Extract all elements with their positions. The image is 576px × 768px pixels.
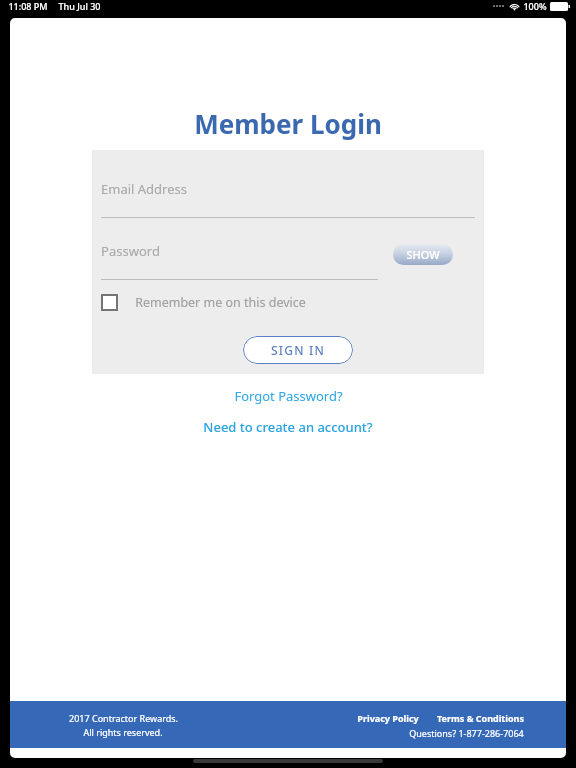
staticText: Terms & Conditions	[437, 712, 524, 724]
button[interactable]: SHOW	[393, 244, 453, 265]
staticText: Member Login	[194, 106, 382, 141]
staticText: Thu Jul 30	[58, 0, 101, 12]
button[interactable]: Terms & Conditions	[437, 712, 524, 724]
staticText: 11:08 PM	[8, 0, 48, 12]
staticText: Need to create an account?	[203, 418, 373, 436]
button[interactable]: Password	[101, 234, 378, 280]
staticText: SIGN IN	[271, 342, 325, 358]
staticText: Password	[101, 242, 160, 260]
staticText: Privacy Policy	[357, 712, 419, 724]
staticText: Forgot Password?	[234, 387, 343, 405]
staticText: Questions? 1-877-286-7064	[409, 727, 524, 739]
button[interactable]: Remember me on this device	[101, 288, 306, 316]
staticText: All rights reserved.	[83, 726, 163, 738]
staticText: SHOW	[406, 247, 440, 262]
staticText: 100%	[523, 0, 547, 12]
button[interactable]: Email Address	[101, 172, 475, 218]
button[interactable]: Privacy Policy	[357, 712, 419, 724]
staticText: 2017 Contractor Rewards.	[69, 712, 178, 724]
button[interactable]: SIGN IN	[243, 336, 353, 364]
button[interactable]: Need to create an account?	[10, 414, 566, 440]
button[interactable]: Forgot Password?	[10, 383, 566, 409]
staticText: Email Address	[101, 180, 187, 198]
staticText: Remember me on this device	[135, 294, 306, 311]
